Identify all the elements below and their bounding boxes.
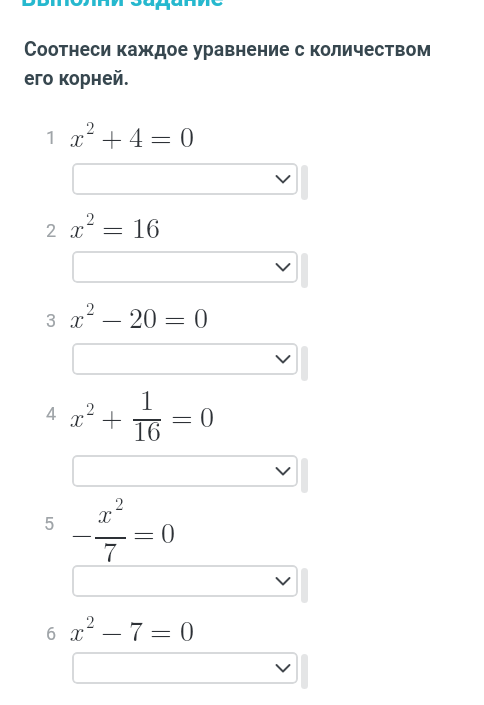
staticText: = xyxy=(150,609,172,649)
staticText: x xyxy=(69,609,82,649)
staticText: 1 xyxy=(46,127,57,148)
staticText: 6 xyxy=(46,623,57,644)
staticText: 2 xyxy=(115,491,124,515)
staticText: 1 xyxy=(140,378,155,418)
button[interactable] xyxy=(72,565,298,597)
button[interactable] xyxy=(72,343,298,375)
staticText: x xyxy=(69,115,82,155)
staticText: = xyxy=(150,115,172,155)
staticText: 2 xyxy=(86,396,95,420)
staticText: 7 xyxy=(129,609,144,649)
staticText: 0 xyxy=(194,296,209,336)
staticText: 0 xyxy=(161,511,176,551)
staticText: = xyxy=(133,511,155,551)
staticText: = xyxy=(164,296,186,336)
staticText: 7 xyxy=(103,530,118,570)
staticText: Выполни задание xyxy=(21,0,224,12)
button[interactable] xyxy=(72,251,298,283)
staticText: 3 xyxy=(46,310,57,331)
staticText: 16 xyxy=(133,409,162,449)
staticText: − xyxy=(101,609,123,649)
staticText: x xyxy=(69,206,82,246)
staticText: 2 xyxy=(46,220,57,241)
staticText: x xyxy=(97,491,110,531)
staticText: x xyxy=(69,395,82,435)
button[interactable] xyxy=(72,455,298,487)
staticText: Соотнеси каждое уравнение с количеством … xyxy=(24,38,432,90)
staticText: = xyxy=(102,206,124,246)
staticText: − xyxy=(101,296,123,336)
staticText: + xyxy=(101,395,123,435)
staticText: 0 xyxy=(180,115,195,155)
staticText: = xyxy=(171,395,193,435)
staticText: 2 xyxy=(86,609,95,633)
staticText: 2 xyxy=(86,296,95,320)
staticText: 2 xyxy=(86,115,95,139)
staticText: 16 xyxy=(132,206,161,246)
staticText: + xyxy=(101,115,123,155)
staticText: 0 xyxy=(180,609,195,649)
button[interactable] xyxy=(72,652,298,684)
staticText: 0 xyxy=(200,395,215,435)
staticText: x xyxy=(69,296,82,336)
staticText: 2 xyxy=(86,206,95,230)
staticText: − xyxy=(71,511,93,551)
button[interactable] xyxy=(72,163,298,195)
staticText: 5 xyxy=(44,513,55,534)
staticText: 20 xyxy=(129,296,158,336)
staticText: 4 xyxy=(46,403,57,424)
staticText: 4 xyxy=(129,115,144,155)
